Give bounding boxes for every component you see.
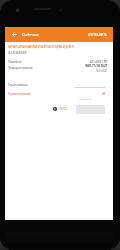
staticText: ФОТО [59, 107, 67, 111]
staticText: Лицевой счет [8, 60, 22, 64]
staticText: 9681.77 / 30.10.21 [85, 64, 108, 68]
staticText: Не указаны показания [8, 92, 31, 96]
button[interactable]: ОТПРАВИТЬ [83, 29, 113, 41]
staticText: ОТПРАВИТЬ [88, 33, 108, 37]
staticText: БАРНАУЛ, АЛТАЙСКИЙ КРАЙ, УЛ. ВЬЕТСКАЯ ОТ… [8, 45, 74, 49]
staticText: 30.10.2021 [96, 69, 108, 73]
staticText: 621-40021-FD [90, 60, 108, 64]
staticText: 0/8 [102, 92, 106, 96]
staticText: Примечание [79, 97, 92, 100]
staticText: ГАЗОСНАБЖЕНИЕ [8, 51, 27, 55]
button[interactable]: ФОТО [53, 107, 67, 111]
staticText: Предыдущее показание [8, 66, 33, 70]
staticText: Текущее показание [8, 83, 28, 87]
staticText: Счётчик [22, 32, 39, 38]
button[interactable]: Back [8, 27, 21, 42]
